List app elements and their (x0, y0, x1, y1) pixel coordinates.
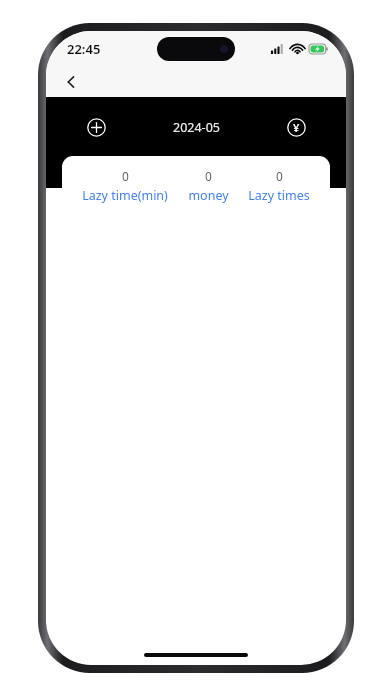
staticText: ¥ (293, 120, 300, 135)
staticText: 2024-05 (173, 119, 220, 136)
staticText: Lazy time(min) (82, 187, 168, 204)
staticText: Lazy times (248, 187, 310, 204)
staticText: money (188, 187, 229, 204)
staticText: 0 (205, 168, 212, 184)
button[interactable]: Back (56, 67, 86, 97)
button[interactable]: Add (80, 111, 112, 143)
staticText: 0 (276, 168, 283, 184)
button[interactable]: 0 (62, 156, 330, 215)
staticText: 0 (122, 168, 129, 184)
staticText: 22:45 (67, 40, 101, 58)
button[interactable]: Money (280, 111, 312, 143)
